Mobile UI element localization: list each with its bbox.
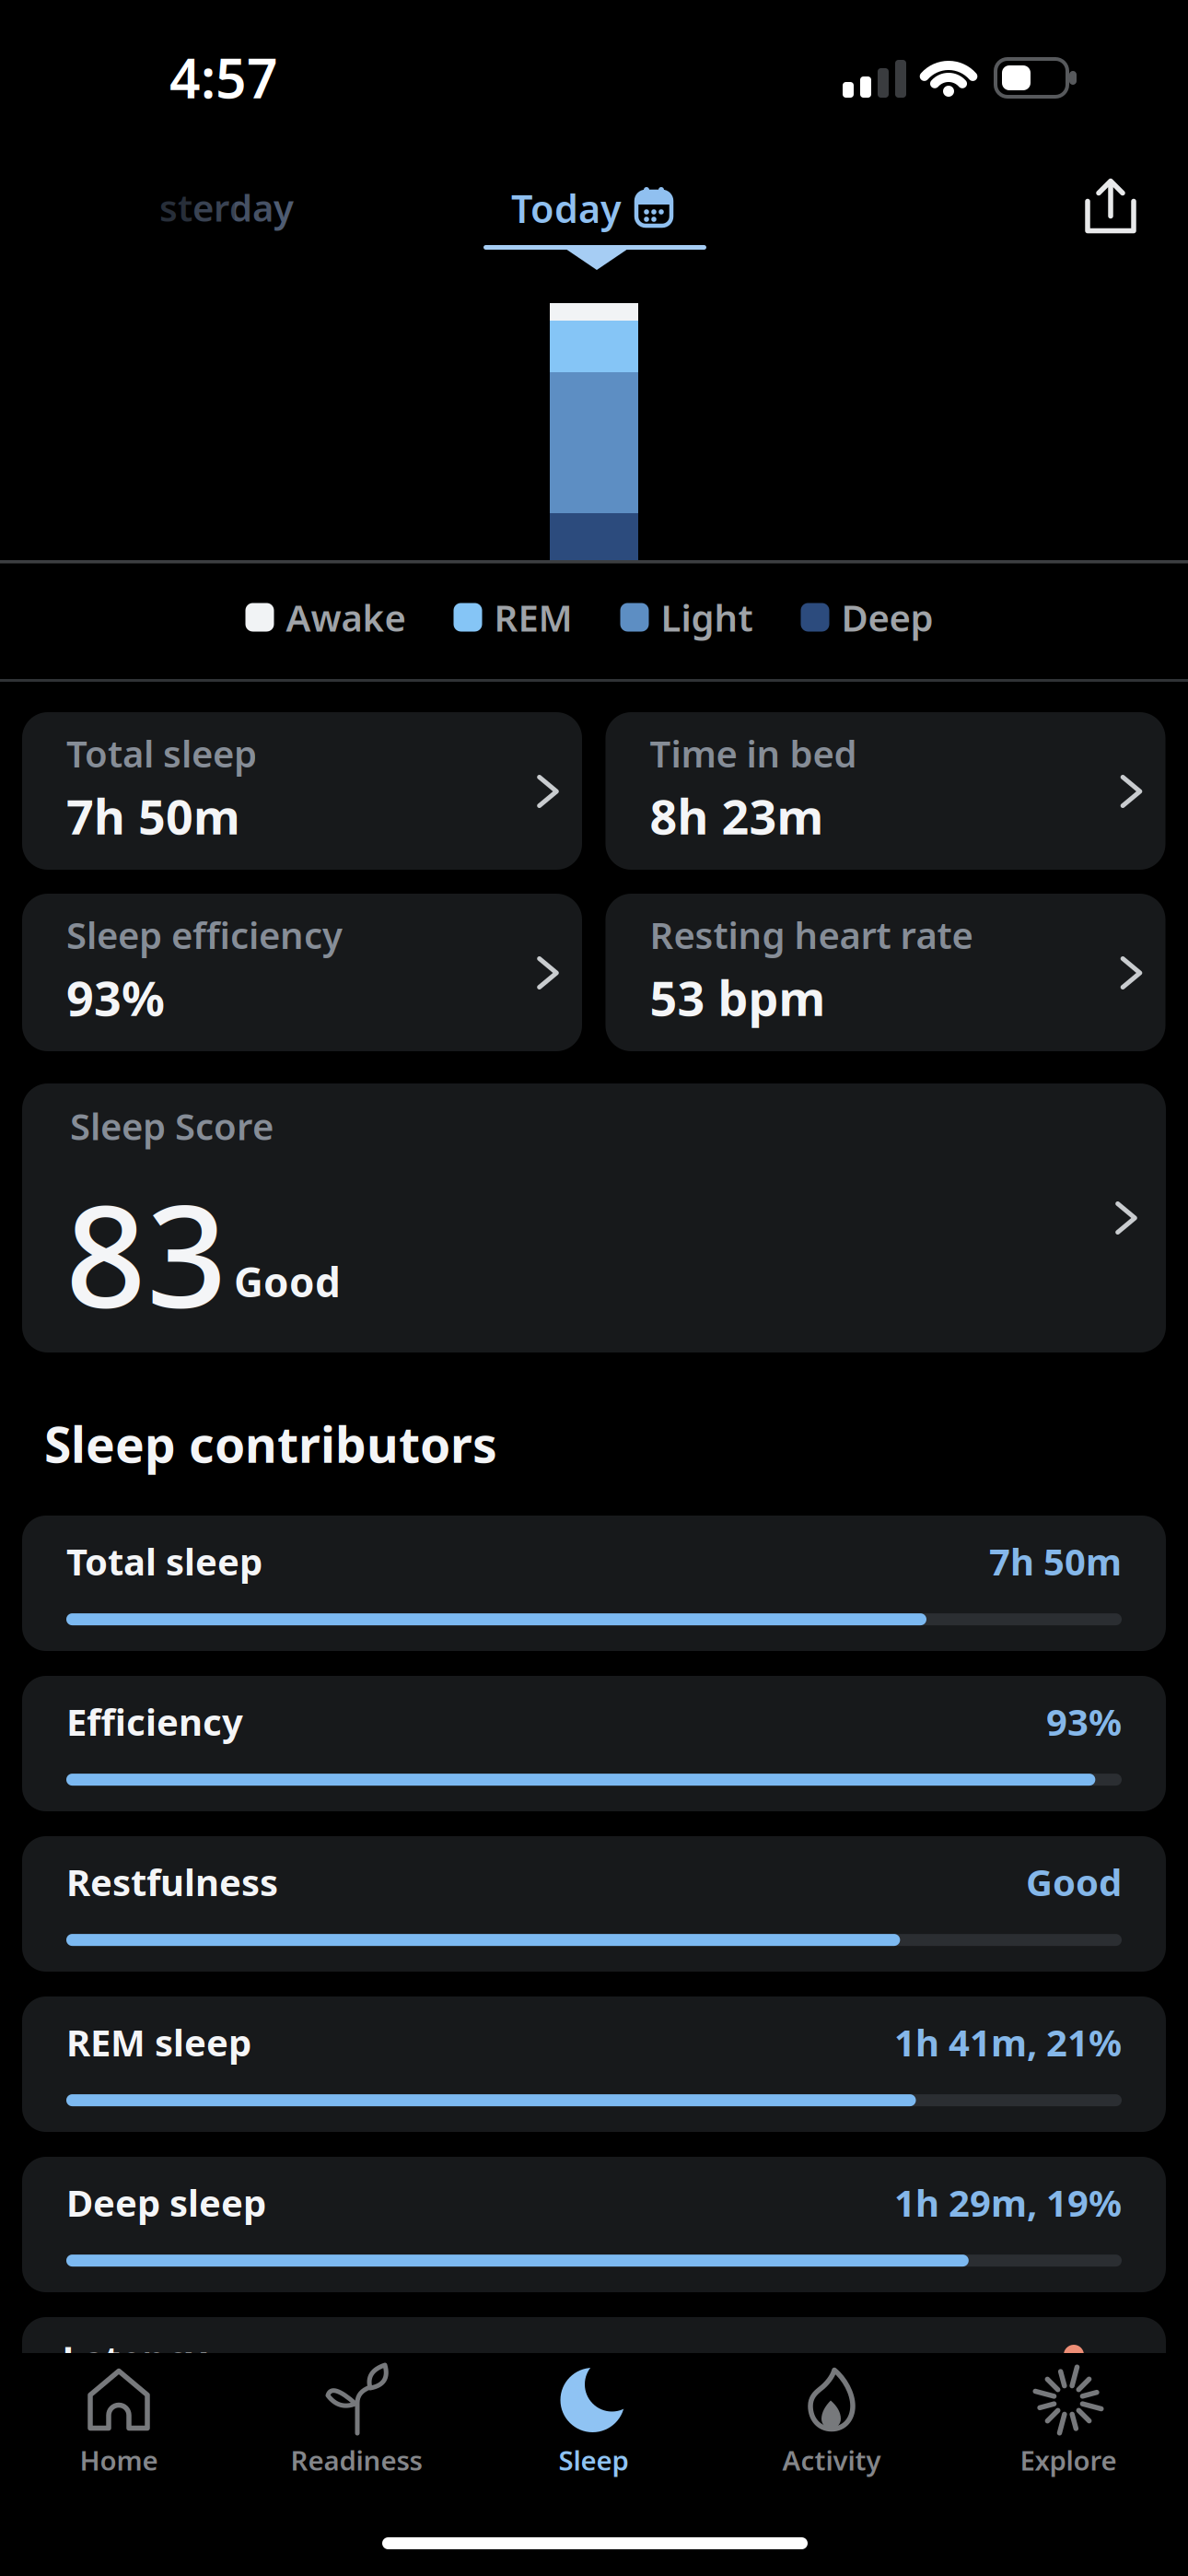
staticText: Restfulness — [66, 1857, 278, 1906]
button[interactable]: Activity — [713, 2353, 950, 2528]
button[interactable]: Readiness — [238, 2353, 475, 2528]
staticText: 7h 50m — [66, 784, 240, 848]
button[interactable]: Resting heart rate — [606, 894, 1165, 1051]
staticText: 4:57 — [169, 41, 278, 113]
staticText: Deep sleep — [66, 2178, 266, 2227]
button[interactable]: Home — [0, 2353, 238, 2528]
button[interactable]: Total sleep — [22, 712, 582, 870]
staticText: sterday — [159, 183, 294, 232]
staticText: 8h 23m — [650, 784, 824, 848]
staticText: Sleep Score — [70, 1101, 274, 1150]
staticText: Sleep contributors — [44, 1411, 497, 1476]
staticText: 7h 50m — [989, 1537, 1122, 1586]
staticText: REM — [494, 593, 572, 642]
staticText: 1h 29m, 19% — [894, 2178, 1122, 2227]
button[interactable]: sterday — [125, 175, 328, 240]
staticText: 83 — [65, 1158, 227, 1346]
staticText: Light — [661, 593, 753, 642]
button[interactable]: Explore — [949, 2353, 1187, 2528]
button[interactable]: Sleep — [475, 2353, 712, 2528]
button[interactable]: Total sleep — [22, 1516, 1166, 1651]
staticText: Sleep — [559, 2442, 629, 2478]
button[interactable]: Sleep efficiency — [22, 894, 582, 1051]
staticText: Explore — [1020, 2442, 1117, 2478]
button[interactable]: Deep sleep — [22, 2157, 1166, 2292]
staticText: Sleep efficiency — [66, 910, 343, 959]
staticText: Activity — [782, 2442, 881, 2478]
staticText: Latency — [62, 2334, 207, 2383]
button[interactable]: Time in bed — [606, 712, 1165, 870]
button[interactable]: Today — [511, 174, 673, 242]
staticText: Good — [234, 1255, 341, 1308]
staticText: 93% — [66, 966, 165, 1029]
button[interactable]: Restfulness — [22, 1836, 1166, 1972]
staticText: Deep — [841, 593, 933, 642]
staticText: Efficiency — [66, 1697, 243, 1746]
staticText: Readiness — [291, 2442, 422, 2478]
staticText: Time in bed — [650, 729, 857, 778]
button[interactable]: Efficiency — [22, 1676, 1166, 1811]
staticText: Good — [1026, 1857, 1122, 1906]
staticText: Total sleep — [66, 1537, 262, 1586]
button[interactable]: Sleep Score — [22, 1083, 1166, 1352]
staticText: 93% — [1046, 1697, 1122, 1746]
staticText: Total sleep — [66, 729, 257, 778]
staticText: Today — [511, 183, 622, 234]
staticText: Awake — [286, 593, 406, 642]
staticText: Resting heart rate — [650, 910, 973, 959]
button[interactable] — [1083, 177, 1138, 235]
staticText: REM sleep — [66, 2018, 251, 2067]
button[interactable]: REM sleep — [22, 1996, 1166, 2132]
staticText: 53 bpm — [650, 966, 826, 1029]
staticText: Home — [80, 2442, 158, 2478]
staticText: 1h 41m, 21% — [894, 2018, 1122, 2067]
